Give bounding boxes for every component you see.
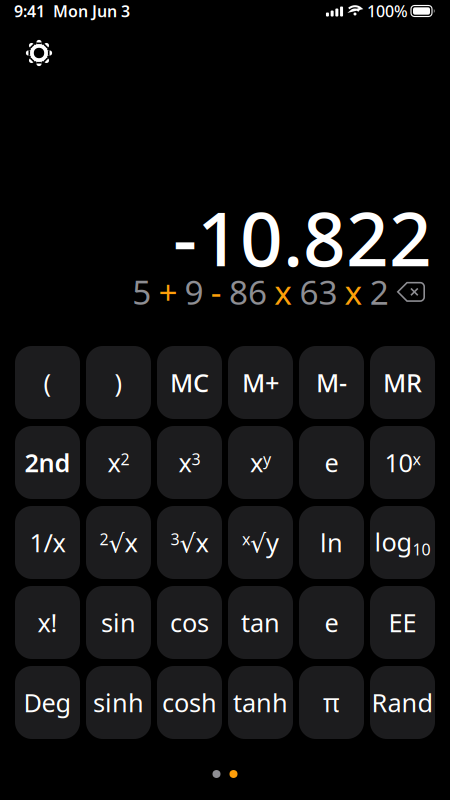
- staticText: 86: [229, 270, 267, 314]
- staticText: 5: [132, 270, 151, 314]
- staticText: M-: [316, 366, 347, 399]
- staticText: ln: [320, 526, 343, 559]
- button[interactable]: xy: [228, 426, 293, 499]
- button[interactable]: 1/x: [15, 506, 80, 579]
- button[interactable]: cos: [157, 586, 222, 659]
- button[interactable]: x!: [15, 586, 80, 659]
- button[interactable]: Deg: [15, 666, 80, 739]
- button[interactable]: x√y: [228, 506, 293, 579]
- staticText: 63: [299, 270, 337, 314]
- button[interactable]: 3√x: [157, 506, 222, 579]
- staticText: 2√x: [99, 526, 137, 559]
- staticText: x!: [37, 606, 57, 639]
- button[interactable]: Settings: [14, 28, 64, 78]
- button[interactable]: tanh: [228, 666, 293, 739]
- staticText: Rand: [371, 686, 433, 719]
- staticText: -: [211, 270, 222, 314]
- staticText: e: [324, 606, 338, 639]
- button[interactable]: x2: [86, 426, 151, 499]
- staticText: sinh: [93, 686, 144, 719]
- button[interactable]: log10: [370, 506, 435, 579]
- button[interactable]: π: [299, 666, 364, 739]
- staticText: x3: [178, 446, 200, 479]
- staticText: MC: [170, 366, 209, 399]
- button[interactable]: MR: [370, 346, 435, 419]
- staticText: xy: [250, 446, 271, 479]
- button[interactable]: M-: [299, 346, 364, 419]
- staticText: +: [158, 270, 177, 314]
- staticText: 10x: [384, 446, 420, 479]
- staticText: M+: [242, 366, 279, 399]
- staticText: x2: [107, 446, 129, 479]
- button[interactable]: cosh: [157, 666, 222, 739]
- button[interactable]: (: [15, 346, 80, 419]
- staticText: MR: [383, 366, 422, 399]
- staticText: Deg: [23, 686, 71, 719]
- staticText: 3√x: [170, 526, 208, 559]
- staticText: 9:41 Mon Jun 3: [14, 0, 130, 22]
- button[interactable]: 10x: [370, 426, 435, 499]
- staticText: 1/x: [29, 526, 65, 559]
- button[interactable]: sin: [86, 586, 151, 659]
- button[interactable]: ): [86, 346, 151, 419]
- staticText: -10.822: [173, 188, 432, 287]
- button[interactable]: e: [299, 426, 364, 499]
- staticText: (: [43, 366, 51, 399]
- button[interactable]: Rand: [370, 666, 435, 739]
- staticText: e: [324, 446, 338, 479]
- staticText: tan: [241, 606, 280, 639]
- button[interactable]: M+: [228, 346, 293, 419]
- staticText: log10: [374, 525, 430, 560]
- staticText: ): [114, 366, 122, 399]
- button[interactable]: MC: [157, 346, 222, 419]
- staticText: x: [274, 270, 292, 314]
- staticText: tanh: [233, 686, 288, 719]
- button[interactable]: sinh: [86, 666, 151, 739]
- button[interactable]: EE: [370, 586, 435, 659]
- staticText: EE: [388, 606, 416, 639]
- button[interactable]: x3: [157, 426, 222, 499]
- staticText: 2: [370, 270, 389, 314]
- staticText: x√y: [242, 526, 279, 559]
- button[interactable]: 2nd: [15, 426, 80, 499]
- button[interactable]: tan: [228, 586, 293, 659]
- staticText: sin: [101, 606, 136, 639]
- staticText: 100%: [367, 0, 408, 22]
- staticText: x: [345, 270, 363, 314]
- button[interactable]: ln: [299, 506, 364, 579]
- staticText: 9: [185, 270, 204, 314]
- staticText: π: [323, 686, 340, 719]
- button[interactable]: 2√x: [86, 506, 151, 579]
- staticText: cos: [170, 606, 209, 639]
- button[interactable]: Delete: [396, 282, 425, 302]
- button[interactable]: e: [299, 586, 364, 659]
- staticText: 2nd: [24, 446, 70, 479]
- staticText: cosh: [162, 686, 217, 719]
